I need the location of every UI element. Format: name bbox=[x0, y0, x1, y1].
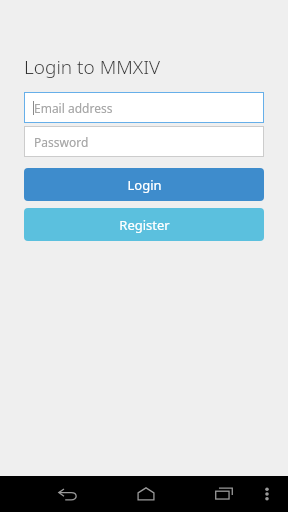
button[interactable]: More options bbox=[254, 476, 280, 512]
button[interactable]: Password bbox=[24, 126, 264, 157]
staticText: Register bbox=[119, 216, 170, 234]
staticText: Password bbox=[34, 134, 89, 150]
staticText: Login bbox=[127, 176, 162, 194]
button[interactable]: Register bbox=[24, 208, 264, 241]
button[interactable]: Recent apps bbox=[202, 476, 246, 512]
button[interactable]: Back bbox=[46, 476, 90, 512]
button[interactable]: Login bbox=[24, 168, 264, 201]
staticText: Email address bbox=[34, 100, 113, 116]
button[interactable]: Email address bbox=[24, 92, 264, 123]
staticText: Login to MMXIV bbox=[24, 54, 161, 80]
button[interactable]: Home bbox=[124, 476, 168, 512]
